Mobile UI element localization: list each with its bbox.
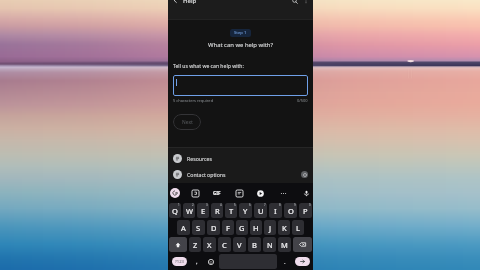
staticText: 5 bbox=[234, 203, 236, 207]
staticText: , bbox=[196, 258, 198, 266]
staticText: N bbox=[267, 240, 273, 250]
staticText: D bbox=[211, 223, 217, 233]
staticText: G bbox=[239, 223, 245, 233]
button[interactable]: J bbox=[264, 220, 276, 235]
staticText: 0 bbox=[309, 203, 311, 207]
staticText: A bbox=[181, 223, 186, 233]
button[interactable]: V bbox=[233, 237, 246, 252]
staticText: T bbox=[229, 206, 234, 216]
staticText: H bbox=[253, 223, 259, 233]
staticText: Contact options bbox=[187, 171, 226, 178]
staticText: L bbox=[296, 223, 300, 233]
staticText: V bbox=[237, 240, 242, 250]
staticText: 6 bbox=[249, 203, 251, 207]
button[interactable]: B bbox=[248, 237, 261, 252]
staticText: 2 bbox=[192, 203, 194, 207]
button[interactable]: K bbox=[278, 220, 290, 235]
button[interactable]: X bbox=[203, 237, 216, 252]
staticText: Step 1 bbox=[234, 30, 247, 36]
button[interactable]: L bbox=[292, 220, 304, 235]
button[interactable]: Contact options bbox=[168, 166, 313, 182]
button[interactable]: T bbox=[225, 203, 237, 218]
staticText: What can we help with? bbox=[208, 41, 273, 49]
staticText: X bbox=[207, 240, 212, 250]
button[interactable]: Resources bbox=[168, 150, 313, 166]
staticText: C bbox=[222, 240, 227, 250]
button[interactable]: Back bbox=[170, 0, 181, 6]
staticText: 7 bbox=[264, 203, 266, 207]
staticText: I bbox=[274, 206, 277, 216]
staticText: 5 characters required bbox=[173, 98, 214, 103]
button[interactable]: N bbox=[263, 237, 276, 252]
button[interactable]: P bbox=[299, 203, 312, 218]
staticText: Z bbox=[193, 240, 198, 250]
button[interactable]: M bbox=[278, 237, 291, 252]
button[interactable]: Z bbox=[189, 237, 201, 252]
button[interactable]: R bbox=[211, 203, 223, 218]
button[interactable]: Enter bbox=[292, 253, 313, 270]
button[interactable] bbox=[173, 75, 308, 96]
button[interactable]: Symbols bbox=[168, 253, 190, 270]
button[interactable]: F bbox=[222, 220, 234, 235]
button[interactable]: U bbox=[254, 203, 267, 218]
button[interactable]: Y bbox=[239, 203, 252, 218]
staticText: M bbox=[281, 240, 288, 250]
button[interactable]: Help bbox=[301, 171, 308, 178]
button[interactable]: More options bbox=[300, 0, 311, 6]
button[interactable]: Backspace bbox=[293, 237, 312, 252]
staticText: Next bbox=[182, 119, 193, 126]
staticText: 8 bbox=[279, 203, 281, 207]
staticText: ?123 bbox=[175, 259, 185, 265]
staticText: S bbox=[196, 223, 201, 233]
button[interactable]: D bbox=[207, 220, 220, 235]
button[interactable]: Clipboard bbox=[234, 188, 244, 198]
button[interactable]: W bbox=[183, 203, 195, 218]
staticText: J bbox=[269, 223, 272, 233]
button[interactable]: H bbox=[250, 220, 262, 235]
staticText: Help bbox=[183, 0, 197, 5]
button[interactable]: E bbox=[197, 203, 209, 218]
button[interactable]: Stickers bbox=[190, 188, 200, 198]
button[interactable]: Q bbox=[169, 203, 181, 218]
button[interactable]: Voice input bbox=[301, 188, 311, 198]
button[interactable]: I bbox=[269, 203, 282, 218]
staticText: Y bbox=[243, 206, 248, 216]
staticText: B bbox=[252, 240, 257, 250]
button[interactable]: Translate bbox=[255, 188, 265, 198]
staticText: F bbox=[226, 223, 230, 233]
button[interactable]: S bbox=[192, 220, 205, 235]
button[interactable]: Next bbox=[173, 114, 201, 130]
button[interactable]: O bbox=[284, 203, 297, 218]
staticText: Resources bbox=[187, 155, 212, 162]
staticText: 4 bbox=[220, 203, 222, 207]
staticText: R bbox=[215, 206, 220, 216]
button[interactable]: G bbox=[236, 220, 248, 235]
button[interactable]: Comma bbox=[190, 253, 204, 270]
staticText: P bbox=[303, 206, 308, 216]
staticText: E bbox=[201, 206, 206, 216]
staticText: 1 bbox=[178, 203, 180, 207]
button[interactable]: More bbox=[278, 188, 288, 198]
staticText: Q bbox=[172, 206, 178, 216]
button[interactable]: Shift bbox=[169, 237, 187, 252]
staticText: 0/500 bbox=[297, 98, 308, 103]
staticText: . bbox=[284, 258, 286, 266]
button[interactable]: Emoji bbox=[204, 253, 218, 270]
button[interactable]: Search bbox=[289, 0, 300, 6]
button[interactable]: Gboard bbox=[170, 188, 180, 198]
staticText: 9 bbox=[294, 203, 296, 207]
staticText: Tell us what we can help with: bbox=[173, 63, 308, 70]
staticText: O bbox=[288, 206, 294, 216]
staticText: W bbox=[186, 206, 193, 216]
staticText: GIF bbox=[213, 190, 221, 196]
staticText: U bbox=[258, 206, 264, 216]
staticText: 3 bbox=[206, 203, 208, 207]
button[interactable]: GIF bbox=[211, 188, 223, 198]
button[interactable]: C bbox=[218, 237, 231, 252]
button[interactable]: A bbox=[177, 220, 190, 235]
button[interactable]: Period bbox=[278, 253, 292, 270]
staticText: K bbox=[282, 223, 287, 233]
